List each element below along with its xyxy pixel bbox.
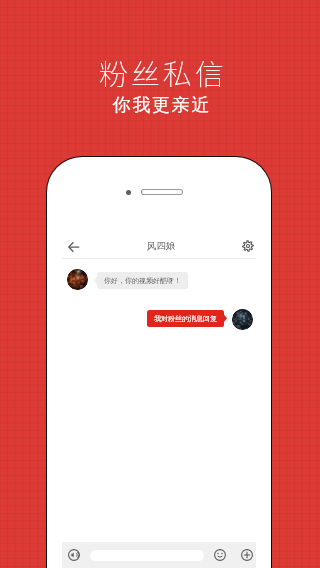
button[interactable]: Back [63,236,85,258]
button[interactable]: More [241,549,253,561]
button[interactable]: Emoji [214,549,226,561]
staticText: 你好，你的视频好酷呀！ [104,276,181,285]
button[interactable]: Settings [238,236,258,256]
staticText: 风四娘 [147,240,176,252]
button[interactable]: 你好，你的视频好酷呀！ [94,272,188,289]
button[interactable]: Voice message [68,549,80,561]
staticText: 你我更亲近 [112,94,210,117]
staticText: 我对粉丝的消息回复 [154,314,217,323]
staticText: 粉丝私信 [99,51,228,93]
button[interactable]: 我对粉丝的消息回复 [147,310,227,327]
